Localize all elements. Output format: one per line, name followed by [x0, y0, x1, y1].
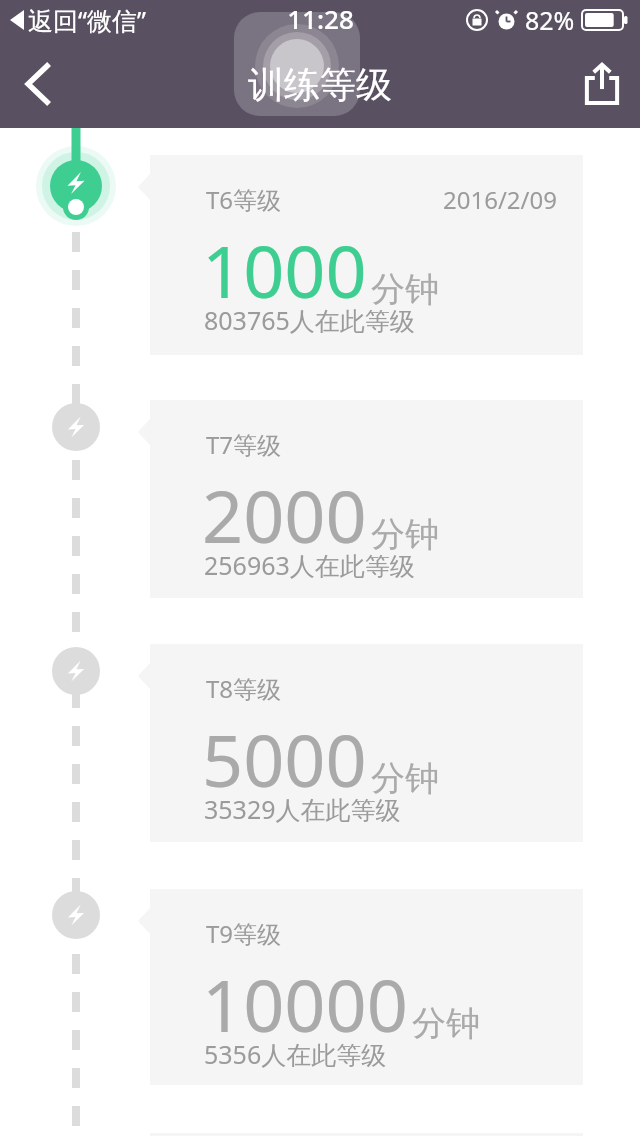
button[interactable]: 返回 — [0, 46, 76, 122]
staticText: 2000 — [202, 466, 367, 564]
button[interactable]: T7等级 — [138, 400, 583, 598]
staticText: 分钟 — [371, 757, 439, 800]
staticText: T7等级 — [206, 428, 282, 461]
staticText: 82% — [525, 3, 575, 37]
staticText: 5000 — [202, 710, 367, 808]
staticText: 训练等级 — [248, 62, 392, 107]
button[interactable]: T6等级 — [138, 155, 583, 355]
staticText: 256963人在此等级 — [204, 548, 415, 582]
staticText: 1000 — [202, 221, 367, 319]
button[interactable]: 等级节点 — [36, 146, 116, 226]
button[interactable]: 辅助触控 — [234, 12, 360, 116]
button[interactable]: 等级节点 — [36, 631, 116, 711]
button[interactable]: 分享 — [564, 46, 640, 122]
staticText: 11:28 — [287, 1, 354, 36]
staticText: T9等级 — [206, 917, 282, 950]
staticText: 10000 — [202, 955, 408, 1053]
staticText: 分钟 — [371, 513, 439, 556]
staticText: 返回“微信” — [28, 3, 146, 37]
staticText: 2016/2/09 — [443, 183, 557, 216]
staticText: 803765人在此等级 — [204, 303, 415, 337]
button[interactable]: 等级节点 — [36, 387, 116, 467]
staticText: 35329人在此等级 — [204, 792, 401, 826]
staticText: 5356人在此等级 — [204, 1037, 387, 1071]
button[interactable]: 等级节点 — [36, 875, 116, 955]
button[interactable]: T8等级 — [138, 644, 583, 842]
staticText: T6等级 — [206, 183, 282, 216]
staticText: 分钟 — [371, 268, 439, 311]
button[interactable]: 返回“微信” — [10, 3, 146, 37]
staticText: 分钟 — [412, 1002, 480, 1045]
button[interactable]: T9等级 — [138, 889, 583, 1085]
staticText: T8等级 — [206, 672, 282, 705]
